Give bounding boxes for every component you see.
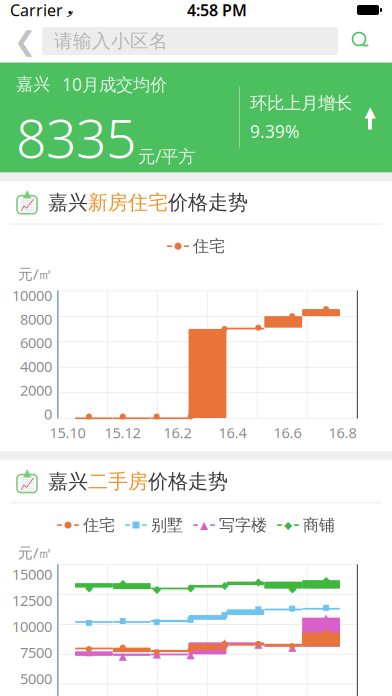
staticText: 5000 bbox=[20, 669, 52, 688]
staticText: 10月成交均价 bbox=[62, 73, 167, 96]
staticText: ▲ bbox=[22, 466, 31, 479]
staticText: ◆ bbox=[322, 574, 330, 586]
staticText: 15.12 bbox=[104, 423, 140, 442]
staticText: 4000 bbox=[20, 357, 52, 376]
staticText: ◆ bbox=[284, 519, 292, 531]
staticText: 4:58 PM bbox=[187, 0, 247, 21]
staticText: 12500 bbox=[12, 590, 52, 610]
staticText: 写字楼 bbox=[219, 515, 267, 535]
staticText: 8000 bbox=[20, 309, 52, 329]
staticText: ◆ bbox=[153, 583, 161, 595]
staticText: ◆ bbox=[85, 582, 93, 594]
staticText: 📈 bbox=[19, 477, 34, 491]
staticText: 16.2 bbox=[163, 423, 191, 442]
staticText: ◞ bbox=[67, 2, 73, 18]
staticText: ▲ bbox=[364, 103, 375, 120]
staticText: 住宅 bbox=[193, 236, 225, 256]
staticText: 6000 bbox=[20, 333, 52, 352]
staticText: 嘉兴 bbox=[48, 469, 88, 494]
staticText: 15000 bbox=[12, 564, 52, 584]
staticText: 商铺 bbox=[303, 515, 335, 535]
staticText: ▲ bbox=[288, 641, 296, 653]
staticText: 元/㎡ bbox=[18, 264, 53, 284]
staticText: ▲ bbox=[254, 638, 262, 650]
staticText: ▲ bbox=[187, 648, 195, 660]
staticText: 16.6 bbox=[273, 423, 301, 442]
staticText: ◆ bbox=[220, 579, 228, 591]
staticText: 新房住宅 bbox=[88, 190, 168, 215]
staticText: ▲ bbox=[85, 645, 93, 657]
staticText: 15.10 bbox=[49, 423, 85, 442]
button[interactable]: Back bbox=[8, 21, 42, 61]
staticText: ◆ bbox=[187, 582, 195, 594]
staticText: 嘉兴 bbox=[16, 74, 50, 95]
staticText: 元/平方 bbox=[138, 145, 195, 168]
staticText: 16.8 bbox=[328, 423, 356, 442]
staticText: 2000 bbox=[20, 380, 52, 400]
staticText: ▲ bbox=[220, 636, 228, 648]
staticText: 10000 bbox=[12, 617, 52, 636]
staticText: 请输入小区名 bbox=[54, 29, 168, 52]
staticText: ◆ bbox=[288, 583, 296, 595]
staticText: 0 bbox=[44, 404, 52, 424]
staticText: 📈 bbox=[19, 198, 34, 212]
staticText: ▲ bbox=[322, 612, 330, 624]
staticText: 别墅 bbox=[151, 515, 183, 535]
staticText: 嘉兴 bbox=[48, 190, 88, 215]
staticText: 9.39% bbox=[250, 120, 299, 143]
staticText: ▲ bbox=[119, 650, 127, 662]
staticText: 8335 bbox=[16, 102, 136, 173]
staticText: ▲ bbox=[153, 648, 161, 660]
staticText: Carrier bbox=[10, 0, 63, 21]
staticText: 7500 bbox=[20, 643, 52, 662]
button[interactable]: Search bbox=[338, 21, 384, 61]
staticText: 住宅 bbox=[83, 515, 115, 535]
staticText: ◆ bbox=[254, 576, 262, 588]
staticText: 环比上月增长 bbox=[250, 92, 352, 114]
staticText: 10000 bbox=[12, 285, 52, 305]
staticText: ❮ bbox=[14, 26, 36, 56]
staticText: 价格走势 bbox=[148, 469, 228, 494]
staticText: ◆ bbox=[119, 577, 127, 589]
staticText: 元/㎡ bbox=[18, 543, 53, 562]
staticText: ▲ bbox=[22, 187, 31, 200]
staticText: 二手房 bbox=[88, 469, 148, 494]
staticText: 价格走势 bbox=[168, 190, 248, 215]
staticText: ▲ bbox=[200, 519, 208, 531]
staticText: 16.4 bbox=[218, 423, 246, 442]
